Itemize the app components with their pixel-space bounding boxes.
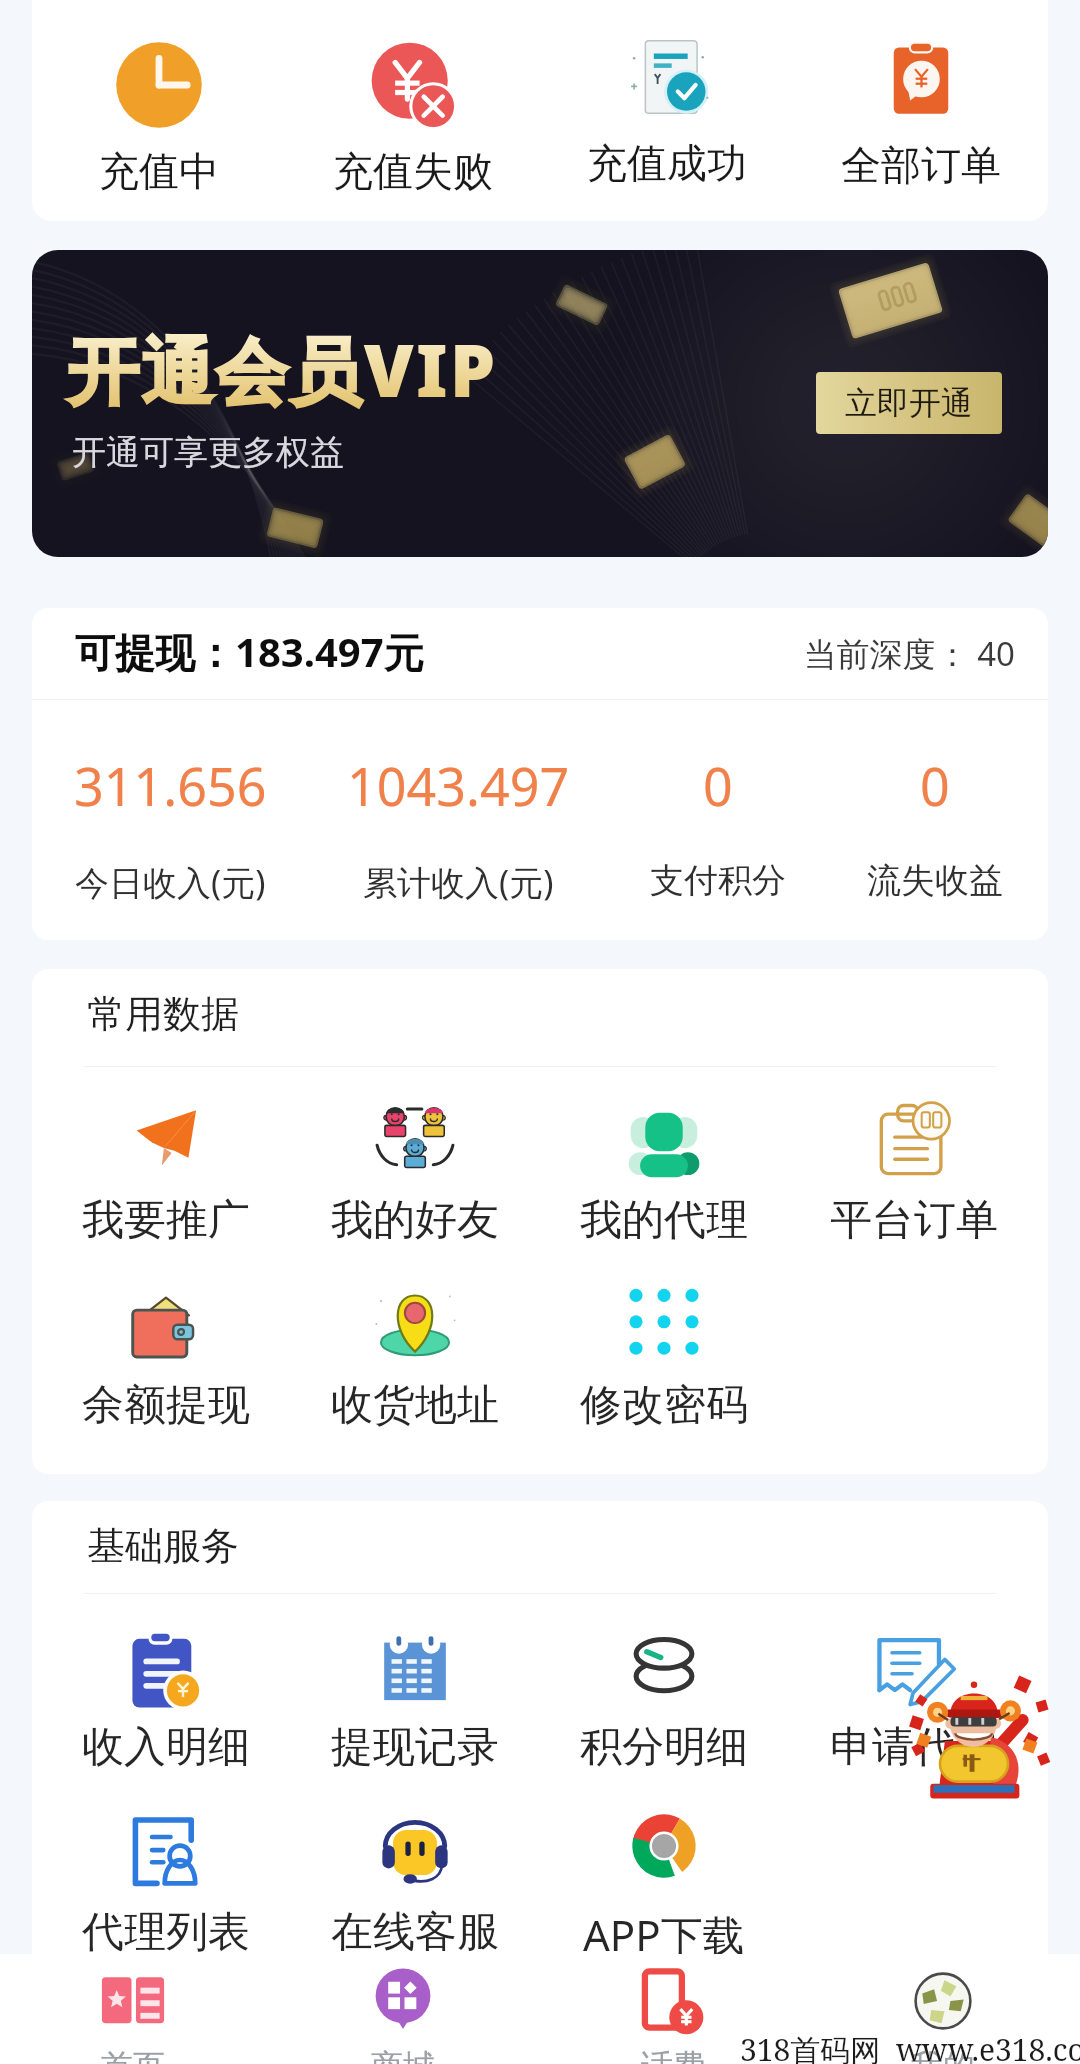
button[interactable]: 修改密码 — [554, 1281, 774, 1432]
staticText: 平台订单 — [830, 1194, 998, 1247]
staticText: 修改密码 — [580, 1379, 748, 1432]
button[interactable]: 立即开通 — [816, 372, 1002, 434]
staticText: 首页 — [101, 2046, 165, 2064]
button[interactable]: 平台订单 — [804, 1096, 1024, 1247]
staticText: 常用数据 — [87, 990, 239, 1038]
staticText: 充值中 — [99, 146, 219, 196]
button[interactable]: 收入明细 — [56, 1623, 276, 1774]
button[interactable]: 余额提现 — [56, 1281, 276, 1432]
button[interactable]: APP下载 — [554, 1808, 774, 1963]
staticText: 累计收入(元) — [363, 859, 554, 905]
button[interactable]: 收货地址 — [305, 1281, 525, 1432]
staticText: 311.656 — [74, 750, 267, 821]
staticText: 充值失败 — [333, 146, 493, 196]
button[interactable]: 开通会员VIP — [32, 250, 1048, 557]
staticText: 在线客服 — [331, 1906, 499, 1959]
button[interactable]: 我的 — [843, 1964, 1043, 2064]
staticText: 我的 — [911, 2046, 975, 2064]
staticText: 全部订单 — [841, 140, 1001, 190]
staticText: 申请代理 — [830, 1721, 998, 1774]
staticText: 318首码网 www.e318.com — [740, 2029, 1080, 2064]
staticText: 当前深度： 40 — [762, 631, 1015, 676]
staticText: 余额提现 — [82, 1379, 250, 1432]
staticText: 0 — [920, 750, 950, 821]
staticText: 提现记录 — [331, 1721, 499, 1774]
button[interactable]: 在线客服 — [305, 1808, 525, 1959]
button[interactable]: 充值成功 — [537, 30, 797, 188]
button[interactable]: 我的代理 — [554, 1096, 774, 1247]
staticText: 收入明细 — [82, 1721, 250, 1774]
button[interactable]: 全部订单 — [791, 32, 1051, 190]
staticText: 1043.497 — [347, 750, 570, 821]
button[interactable]: 代理列表 — [56, 1808, 276, 1959]
staticText: 商城 — [371, 2046, 435, 2064]
staticText: 0 — [703, 750, 733, 821]
staticText: 充值成功 — [587, 138, 747, 188]
button[interactable]: 充值中 — [29, 38, 289, 196]
staticText: 积分明细 — [580, 1721, 748, 1774]
button[interactable]: 话费 — [573, 1964, 773, 2064]
button[interactable]: 积分明细 — [554, 1623, 774, 1774]
staticText: 我要推广 — [82, 1194, 250, 1247]
button[interactable]: 提现记录 — [305, 1623, 525, 1774]
staticText: 话费 — [641, 2046, 705, 2064]
staticText: 流失收益 — [867, 859, 1003, 902]
button[interactable]: 申请代理 — [804, 1623, 1024, 1774]
button[interactable]: 充值失败 — [283, 38, 543, 196]
staticText: 立即开通 — [845, 383, 973, 423]
staticText: 今日收入(元) — [75, 859, 266, 905]
staticText: 可提现：183.497元 — [75, 624, 424, 679]
staticText: 收货地址 — [331, 1379, 499, 1432]
staticText: 支付积分 — [650, 859, 786, 902]
button[interactable]: 我要推广 — [56, 1096, 276, 1247]
button[interactable]: 我的好友 — [305, 1096, 525, 1247]
staticText: 我的代理 — [580, 1194, 748, 1247]
staticText: 基础服务 — [87, 1522, 239, 1570]
staticText: 开通可享更多权益 — [72, 431, 344, 474]
button[interactable]: 首页 — [33, 1964, 233, 2064]
staticText: APP下载 — [583, 1906, 745, 1963]
button[interactable]: 商城 — [303, 1964, 503, 2064]
staticText: 代理列表 — [82, 1906, 250, 1959]
staticText: 开通会员VIP — [67, 320, 498, 418]
staticText: 我的好友 — [331, 1194, 499, 1247]
